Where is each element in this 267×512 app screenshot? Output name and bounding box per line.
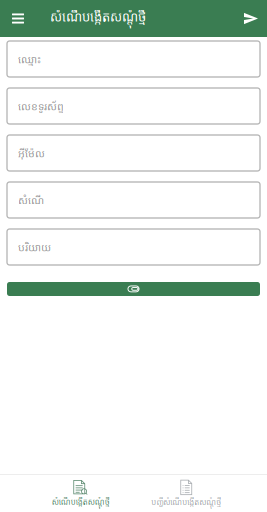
button[interactable]: Send — [234, 0, 267, 37]
staticText: អុីម៉ែល — [18, 146, 45, 160]
staticText: បញ្ជីសំណើបង្កើតសណ្តុំថ្មី — [151, 497, 221, 507]
button[interactable]: Menu — [0, 0, 50, 37]
button[interactable]: Attach file — [0, 265, 267, 296]
staticText: សំណើបង្កើតសណ្តុំថ្មី — [52, 496, 110, 507]
button[interactable]: បញ្ជីសំណើបង្កើតសណ្តុំថ្មី — [133, 475, 239, 512]
staticText: សំណើបង្កើតសណ្តុំថ្មី — [50, 8, 146, 25]
button[interactable]: សំណើបង្កើតសណ្តុំថ្មី — [28, 475, 133, 512]
staticText: សំណើ — [18, 193, 44, 207]
staticText: លេខទូរស័ព្ទ — [18, 99, 64, 113]
staticText: បរិយាយ — [18, 240, 51, 254]
staticText: ឈ្មោះ — [18, 52, 41, 66]
